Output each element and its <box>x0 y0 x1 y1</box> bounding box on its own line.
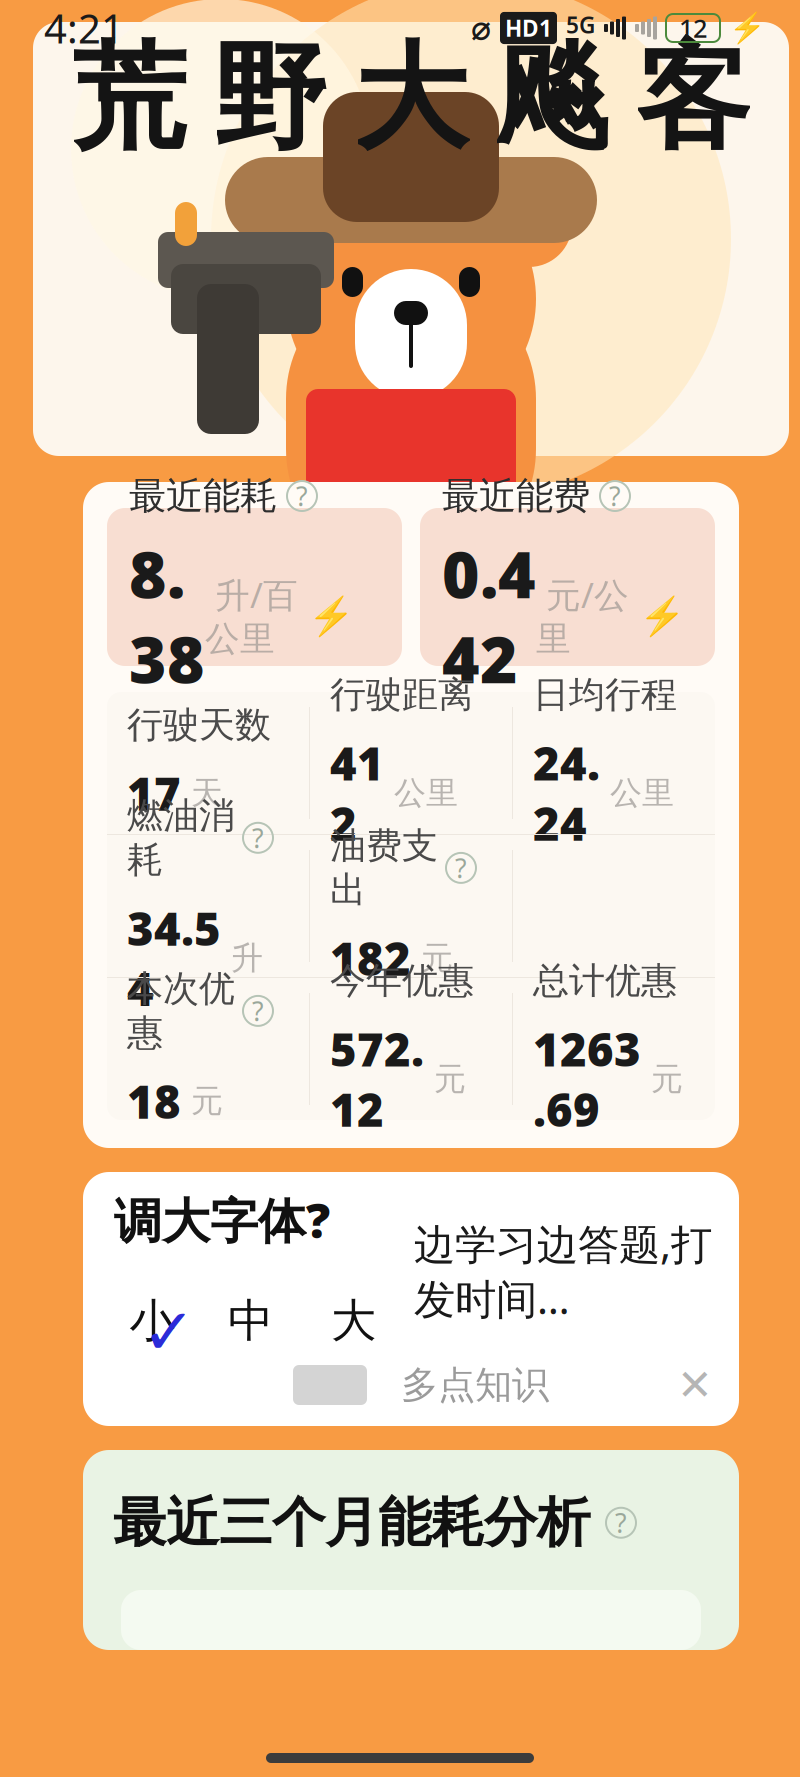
button[interactable]: 行驶距离 <box>310 692 512 834</box>
staticText: ⚡ <box>729 11 766 45</box>
staticText: 行驶距离 <box>330 673 474 717</box>
button[interactable]: 行驶天数 <box>107 692 309 834</box>
staticText: 18 <box>127 1071 181 1131</box>
staticText: ⚡ <box>308 595 354 637</box>
staticText: 最近三个月能耗分析 <box>113 1490 590 1555</box>
staticText: 572.12 <box>330 1019 424 1139</box>
staticText: ? <box>252 993 264 1029</box>
staticText: 8.38 <box>129 531 205 701</box>
staticText: ⚡ <box>639 595 685 637</box>
staticText: HD1 <box>505 13 552 43</box>
staticText: 最近能费 <box>442 473 590 519</box>
button[interactable]: 总计优惠 <box>513 978 715 1120</box>
staticText: ? <box>609 478 621 514</box>
button[interactable]: 今年优惠 <box>310 978 512 1120</box>
staticText: ⌀ <box>471 9 491 47</box>
staticText: 大 <box>353 28 468 169</box>
staticText: 4:21 <box>44 1 124 54</box>
staticText: 中 <box>228 1293 273 1349</box>
staticText: 0.442 <box>442 531 536 701</box>
button[interactable]: 最近能耗 <box>107 508 402 666</box>
staticText: 升/百公里 <box>205 572 298 660</box>
staticText: ? <box>252 820 264 855</box>
staticText: 24.24 <box>533 733 600 853</box>
button[interactable]: 多点知识 广告 <box>83 1348 739 1422</box>
staticText: 大 <box>331 1293 376 1349</box>
button[interactable]: 空 <box>513 835 715 977</box>
staticText: 边学习边答题,打发时间… <box>414 1216 712 1326</box>
staticText: 元 <box>424 1059 466 1099</box>
staticText: 12 <box>679 11 707 45</box>
button[interactable]: 油费支出 <box>310 835 512 977</box>
staticText: 天 <box>181 773 223 813</box>
button[interactable]: 日均行程 <box>513 692 715 834</box>
staticText: 1263.69 <box>533 1019 641 1139</box>
staticText: 元/公里 <box>536 572 629 660</box>
button[interactable]: 最近能费 <box>420 508 715 666</box>
staticText: 今年优惠 <box>330 959 474 1003</box>
staticText: ✕ <box>677 1361 713 1409</box>
staticText: 5G <box>566 10 595 40</box>
staticText: 17 <box>127 763 181 823</box>
staticText: ? <box>455 850 467 886</box>
staticText: 升 <box>221 939 263 978</box>
staticText: 多点知识 <box>401 1362 549 1408</box>
staticText: 本次优惠 <box>127 967 235 1055</box>
staticText: 调大字体? <box>114 1188 330 1251</box>
staticText: 412 <box>330 733 384 853</box>
staticText: ? <box>296 478 308 514</box>
staticText: 油费支出 <box>330 824 438 912</box>
staticText: ? <box>615 1505 627 1540</box>
staticText: 公里 <box>384 773 458 813</box>
staticText: ✓ <box>142 1296 196 1368</box>
staticText: 客 <box>635 28 750 169</box>
staticText: 荒 <box>71 28 186 169</box>
button[interactable]: 本次优惠 <box>107 978 309 1120</box>
staticText: 行驶天数 <box>127 703 271 747</box>
staticText: 元 <box>641 1059 683 1099</box>
staticText: 野 <box>212 28 327 169</box>
staticText: 最近能耗 <box>129 473 277 519</box>
staticText: 燃油消耗 <box>127 794 235 882</box>
staticText: 34.54 <box>127 898 221 1018</box>
button[interactable]: 荒野大飚客 活动横幅 <box>33 0 789 574</box>
staticText: 总计优惠 <box>533 959 677 1003</box>
staticText: 飚 <box>494 28 609 169</box>
staticText: 元 <box>181 1082 223 1121</box>
staticText: 元 <box>411 939 453 978</box>
button[interactable]: 燃油消耗 <box>107 835 309 977</box>
staticText: 小 <box>129 1293 174 1349</box>
staticText: 182 <box>330 928 411 988</box>
staticText: 公里 <box>600 773 674 813</box>
staticText: 日均行程 <box>533 673 677 717</box>
